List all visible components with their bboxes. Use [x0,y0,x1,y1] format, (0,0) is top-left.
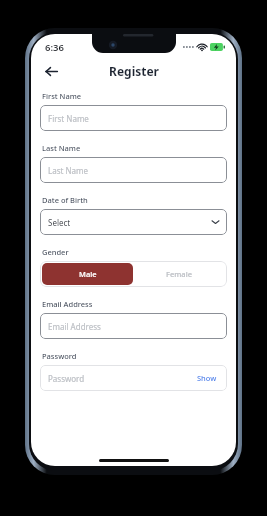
button[interactable]: Last Name [40,157,227,183]
button[interactable]: First Name [40,105,227,131]
button[interactable]: Back [39,59,63,83]
staticText: Email Address [48,321,101,332]
button[interactable]: Password [48,373,85,384]
button[interactable]: Female [133,263,225,285]
button[interactable]: Male [42,263,133,285]
staticText: Gender [42,247,69,257]
staticText: Password [42,351,77,361]
button[interactable]: Email Address [40,313,227,339]
staticText: First Name [48,113,89,124]
staticText: Select [48,217,71,228]
button[interactable]: Show [195,371,219,385]
button[interactable]: Select [40,209,227,235]
staticText: Email Address [42,299,93,309]
staticText: Show [197,373,217,383]
staticText: Male [79,269,97,279]
staticText: Female [166,269,192,279]
staticText: Date of Birth [42,195,88,205]
staticText: Register [109,63,159,79]
staticText: Last Name [42,143,81,153]
staticText: 6:36 [45,41,64,54]
staticText: Last Name [48,165,89,176]
staticText: First Name [42,91,82,101]
